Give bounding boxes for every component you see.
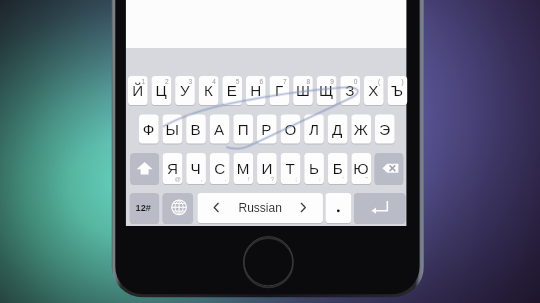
button[interactable] <box>0 0 540 303</box>
